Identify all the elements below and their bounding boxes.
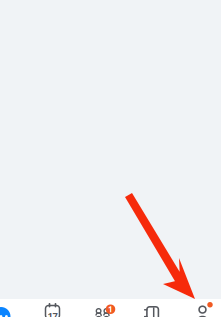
staticText: 17 [47, 309, 57, 317]
button[interactable]: Chats [0, 301, 27, 317]
button[interactable]: Library [127, 301, 177, 317]
button[interactable]: Calendar [27, 301, 77, 317]
button[interactable]: Profile [177, 301, 221, 317]
button[interactable]: Groups [77, 301, 127, 317]
staticText: 1 [108, 304, 113, 314]
